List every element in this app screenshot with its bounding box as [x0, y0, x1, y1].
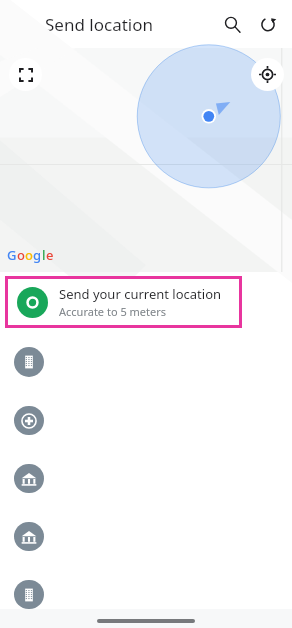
other: Place suggestion	[14, 347, 44, 377]
other: Place suggestion	[14, 406, 44, 435]
button[interactable]: Place suggestion	[0, 464, 292, 493]
button[interactable]: Expand map	[9, 58, 42, 91]
staticText: e	[46, 246, 54, 264]
other: Place suggestion	[14, 464, 44, 493]
button[interactable]: Search	[214, 6, 250, 42]
button[interactable]: Place suggestion	[0, 406, 292, 435]
staticText: l	[42, 246, 46, 264]
button[interactable]: Refresh	[250, 6, 286, 42]
other: Place suggestion	[14, 580, 44, 609]
staticText: o	[17, 246, 25, 264]
button[interactable]: My location	[251, 58, 284, 91]
button[interactable]: Place suggestion	[0, 580, 292, 609]
staticText: Send your current location	[59, 285, 222, 303]
staticText: o	[25, 246, 33, 264]
staticText: Send location	[45, 13, 153, 36]
button[interactable]: Send your current location	[8, 279, 239, 325]
button[interactable]: Place suggestion	[0, 347, 292, 377]
staticText: G	[7, 246, 17, 264]
button[interactable]: Place suggestion	[0, 522, 292, 551]
other: Place suggestion	[14, 522, 44, 551]
staticText: Accurate to 5 meters	[59, 304, 167, 319]
staticText: g	[33, 246, 42, 264]
